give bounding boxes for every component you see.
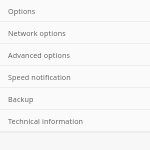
staticText: Advanced options bbox=[8, 50, 70, 60]
button[interactable]: Speed notification bbox=[0, 66, 150, 88]
button[interactable]: Network options bbox=[0, 22, 150, 44]
staticText: Technical information bbox=[8, 116, 84, 126]
staticText: Network options bbox=[8, 28, 66, 38]
staticText: Speed notification bbox=[8, 72, 71, 82]
button[interactable]: Options bbox=[0, 0, 150, 22]
button[interactable]: Backup bbox=[0, 88, 150, 110]
staticText: Backup bbox=[8, 94, 34, 104]
staticText: Options bbox=[8, 6, 36, 16]
button[interactable]: Advanced options bbox=[0, 44, 150, 66]
button[interactable]: Technical information bbox=[0, 110, 150, 132]
